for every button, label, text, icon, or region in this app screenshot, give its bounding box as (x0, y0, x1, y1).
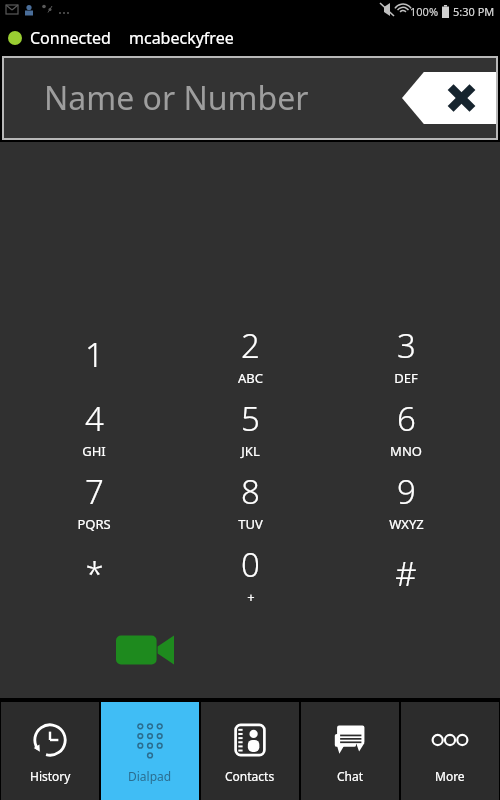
staticText: 0 (241, 542, 260, 587)
button[interactable]: Video call (116, 632, 174, 668)
staticText: TUV (238, 515, 263, 533)
staticText: 100% (410, 4, 439, 19)
staticText: 9 (397, 469, 416, 514)
staticText: 7 (85, 469, 104, 514)
button[interactable]: Backspace (402, 72, 498, 124)
staticText: 8 (241, 469, 260, 514)
staticText: 5:30 PM (453, 4, 495, 19)
staticText: PQRS (77, 515, 111, 533)
button[interactable]: 8 (172, 464, 328, 537)
staticText: MNO (390, 442, 422, 460)
button[interactable]: Dialpad (101, 702, 199, 800)
button[interactable]: 4 (16, 391, 172, 464)
staticText: Chat (337, 768, 364, 784)
staticText: Name or Number (44, 76, 309, 120)
staticText: 4 (85, 396, 104, 441)
staticText: mcabeckyfree (129, 27, 234, 49)
staticText: 6 (397, 396, 416, 441)
staticText: ABC (238, 369, 263, 387)
staticText: 1 (85, 332, 104, 377)
staticText: * (85, 551, 104, 596)
button[interactable]: Contacts (201, 702, 299, 800)
button[interactable]: 2 (172, 318, 328, 391)
staticText: 5 (241, 396, 260, 441)
button[interactable]: 1 (16, 318, 172, 391)
button[interactable]: History (1, 702, 99, 800)
staticText: # (395, 551, 417, 596)
button[interactable]: More (401, 702, 499, 800)
button[interactable]: 9 (328, 464, 484, 537)
staticText: + (247, 588, 255, 606)
button[interactable]: 6 (328, 391, 484, 464)
button[interactable]: 3 (328, 318, 484, 391)
staticText: JKL (241, 442, 260, 460)
staticText: History (30, 768, 71, 784)
button[interactable]: 0 (172, 537, 328, 610)
button[interactable]: 5 (172, 391, 328, 464)
staticText: WXYZ (389, 515, 424, 533)
button[interactable]: # (328, 537, 484, 610)
staticText: More (435, 768, 465, 784)
staticText: GHI (82, 442, 106, 460)
staticText: 3 (397, 323, 416, 368)
button[interactable]: Chat (301, 702, 399, 800)
staticText: Dialpad (128, 768, 172, 784)
staticText: 2 (241, 323, 260, 368)
button[interactable]: Name or Number (2, 56, 498, 140)
staticText: Contacts (225, 768, 275, 784)
staticText: DEF (394, 369, 418, 387)
button[interactable]: 7 (16, 464, 172, 537)
staticText: Connected (30, 27, 111, 49)
button[interactable]: * (16, 537, 172, 610)
